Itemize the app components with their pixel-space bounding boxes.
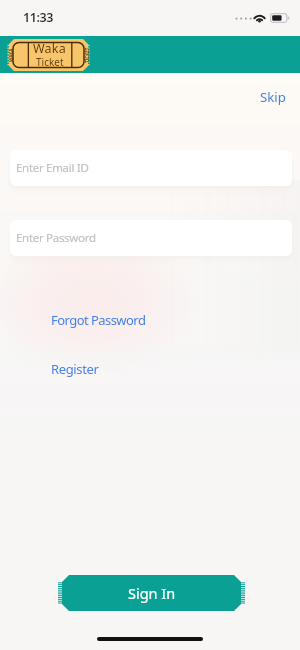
staticText: Ticket — [36, 55, 64, 69]
button[interactable]: Enter Email ID — [10, 150, 292, 186]
staticText: Waka — [33, 40, 66, 57]
staticText: Enter Password — [16, 230, 96, 246]
staticText: Skip — [260, 88, 286, 106]
button[interactable]: Skip — [253, 85, 293, 109]
button[interactable]: Forgot Password — [45, 307, 152, 333]
staticText: WAKA — [8, 48, 14, 62]
staticText: Enter Email ID — [16, 160, 89, 176]
button[interactable]: Enter Password — [10, 220, 292, 256]
staticText: Register — [51, 360, 99, 378]
staticText: TICKET — [84, 47, 90, 63]
button[interactable]: Waka Ticket logo — [9, 39, 88, 71]
staticText: Forgot Password — [51, 311, 146, 329]
button[interactable]: Register — [45, 356, 105, 382]
button[interactable]: Sign In — [62, 575, 241, 611]
staticText: Sign In — [128, 583, 176, 603]
staticText: 11:33 — [23, 9, 54, 26]
